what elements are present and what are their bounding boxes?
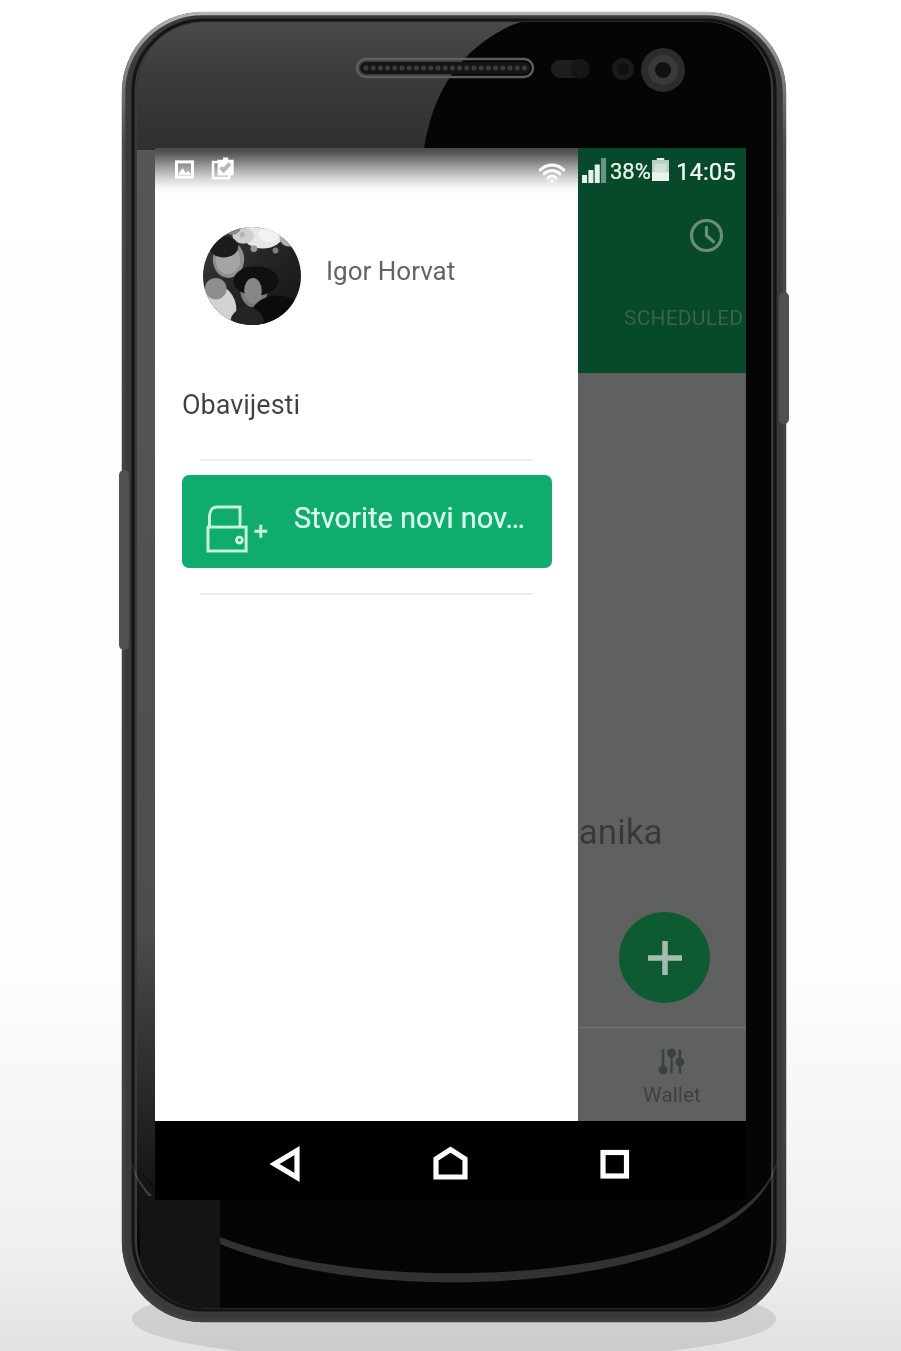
staticText: SCHEDULED: [624, 306, 744, 331]
button[interactable]: Add: [619, 912, 710, 1003]
staticText: Wallet: [643, 1083, 701, 1108]
button[interactable]: Scheduled: [682, 211, 730, 259]
button[interactable]: Profile photo: [203, 227, 301, 325]
staticText: siječanika: [507, 812, 663, 853]
staticText: Obavijesti: [182, 389, 300, 421]
staticText: Igor Horvat: [326, 256, 456, 286]
staticText: 38%: [610, 159, 651, 185]
button[interactable]: Wallet: [597, 1027, 746, 1108]
staticText: Stvorite novi nov…: [294, 501, 525, 535]
staticText: 14:05: [676, 158, 736, 186]
button[interactable]: Stvorite novi nov…: [182, 475, 552, 568]
